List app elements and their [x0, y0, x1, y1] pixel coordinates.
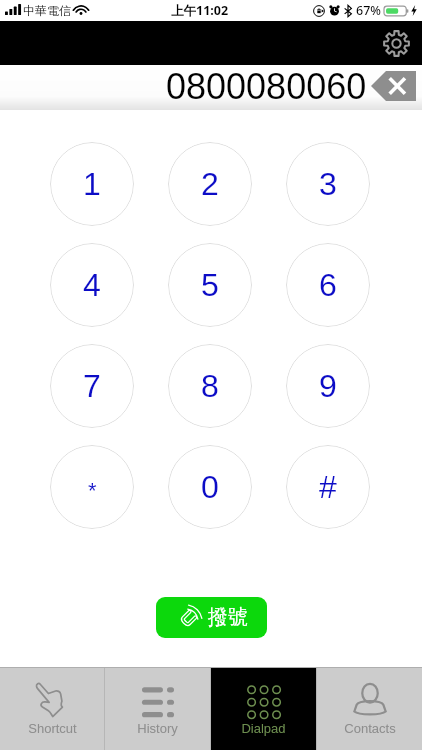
button[interactable]: Shortcut [0, 668, 104, 750]
button[interactable]: # [286, 445, 370, 529]
staticText: 6 [319, 267, 337, 303]
button[interactable]: 3 [286, 142, 370, 226]
staticText: 2 [201, 166, 219, 202]
button[interactable]: 撥號 [156, 597, 267, 638]
staticText: 撥號 [208, 605, 248, 630]
button[interactable]: History [105, 668, 210, 750]
button[interactable]: 7 [50, 344, 134, 428]
button[interactable]: 5 [168, 243, 252, 327]
staticText: Dialpad [241, 721, 286, 736]
button[interactable]: Settings [376, 23, 416, 63]
staticText: 7 [83, 368, 101, 404]
staticText: 3 [319, 166, 337, 202]
button[interactable]: 2 [168, 142, 252, 226]
staticText: 4 [83, 267, 101, 303]
staticText: Contacts [344, 721, 396, 736]
staticText: History [137, 721, 178, 736]
button[interactable]: 1 [50, 142, 134, 226]
staticText: 9 [319, 368, 337, 404]
staticText: 0 [201, 469, 219, 505]
staticText: 5 [201, 267, 219, 303]
button[interactable]: 8 [168, 344, 252, 428]
staticText: * [88, 478, 97, 503]
button[interactable]: Contacts [317, 668, 422, 750]
staticText: 1 [83, 166, 101, 202]
staticText: 8 [201, 368, 219, 404]
button[interactable]: 4 [50, 243, 134, 327]
button[interactable]: 6 [286, 243, 370, 327]
staticText: # [319, 469, 337, 505]
staticText: 67% [356, 2, 381, 19]
button[interactable]: Dialpad [211, 668, 316, 750]
staticText: Shortcut [28, 721, 77, 736]
staticText: 中華電信 [23, 3, 71, 18]
button[interactable]: Delete [371, 71, 416, 101]
button[interactable]: 0 [168, 445, 252, 529]
staticText: 上午11:02 [171, 2, 229, 19]
staticText: 0800080060 [166, 66, 367, 106]
button[interactable]: * [50, 445, 134, 529]
button[interactable]: 9 [286, 344, 370, 428]
